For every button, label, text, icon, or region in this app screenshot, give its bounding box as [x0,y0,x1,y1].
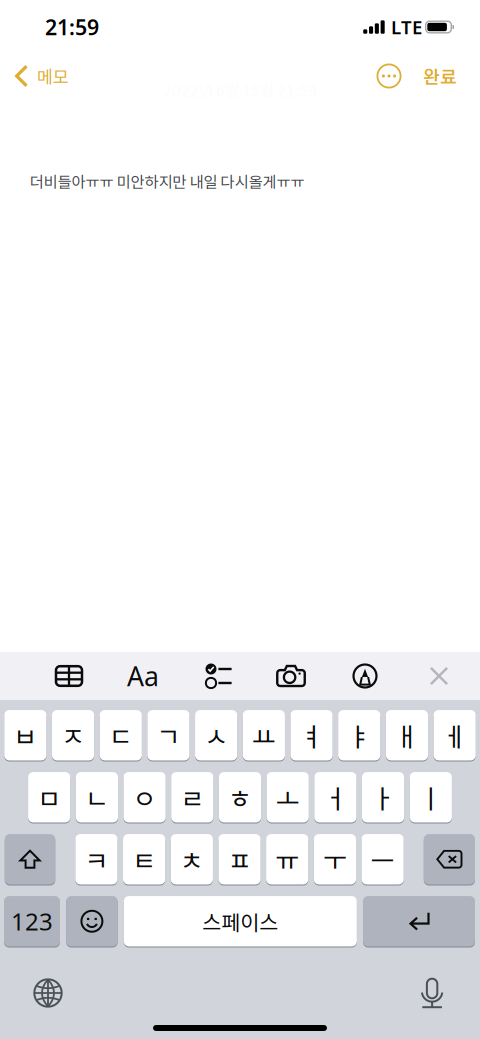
staticText: ㄷ [109,716,133,754]
button[interactable]: 스페이스 [124,895,357,947]
staticText: ㄱ [156,716,180,754]
button[interactable]: ㅕ [290,709,333,761]
staticText: ㅠ [275,840,299,878]
staticText: ㅣ [419,778,443,816]
staticText: 더비들아ㅠㅠ 미안하지만 내일 다시올게ㅠㅠ [29,170,304,192]
button[interactable]: ㅇ [123,771,166,823]
button[interactable] [363,895,475,947]
button[interactable]: ㅊ [171,833,213,885]
button[interactable]: More [357,55,401,97]
staticText: ㅂ [13,716,37,754]
staticText: 스페이스 [202,906,278,936]
staticText: ㅋ [84,840,108,878]
button[interactable]: ㅜ [314,833,356,885]
button[interactable]: ㅛ [243,709,285,761]
button[interactable]: Next keyboard [24,971,72,1015]
staticText: ㅑ [347,716,371,754]
staticText: ㅇ [133,778,157,816]
button[interactable]: Dictate [408,971,456,1015]
button[interactable]: Checklist [180,652,254,700]
staticText: ㅍ [227,840,251,878]
button[interactable]: ㅡ [361,833,404,885]
staticText: ㄴ [85,778,109,816]
staticText: ㅗ [276,778,300,816]
button[interactable]: ㄷ [100,709,142,761]
button[interactable]: 메모 [0,55,79,97]
button[interactable]: ㄱ [147,709,190,761]
button[interactable]: ㅅ [195,709,237,761]
staticText: Aa [127,658,159,694]
staticText: ㅁ [37,778,61,816]
button[interactable]: ㅗ [267,771,309,823]
button[interactable]: Markup [328,652,402,700]
button[interactable]: ㅍ [218,833,261,885]
staticText: ㅓ [323,778,347,816]
button[interactable]: ㅐ [386,709,428,761]
staticText: ㅕ [300,716,324,754]
button[interactable]: ㅋ [75,833,117,885]
button[interactable]: Text format [106,652,180,700]
staticText: ㅔ [443,716,467,754]
button[interactable]: ㅈ [52,709,94,761]
button[interactable] [424,833,475,885]
staticText: 21:59 [45,13,99,41]
button[interactable]: ㅎ [219,771,261,823]
staticText: ㅏ [371,778,395,816]
staticText: ㅌ [132,840,156,878]
staticText: ㅎ [228,778,252,816]
button[interactable]: 완료 [401,55,480,97]
button[interactable]: ㅠ [266,833,308,885]
button[interactable]: ㄴ [76,771,118,823]
button[interactable]: ㅣ [410,771,452,823]
button[interactable]: ㅌ [123,833,165,885]
button[interactable]: ㅑ [338,709,380,761]
button[interactable]: ㅓ [314,771,356,823]
button[interactable]: ㅁ [28,771,70,823]
button[interactable]: Camera [254,652,328,700]
staticText: ㄹ [180,778,204,816]
staticText: ㅐ [395,716,419,754]
button[interactable]: ㅔ [433,709,476,761]
button[interactable] [5,833,55,885]
staticText: ㅈ [61,716,85,754]
button[interactable] [66,895,118,947]
staticText: ㅅ [204,716,228,754]
staticText: 123 [11,905,53,937]
staticText: LTE [391,15,422,39]
staticText: ㅜ [323,840,347,878]
staticText: ㅡ [371,840,395,878]
staticText: ㅊ [180,840,204,878]
button[interactable]: ㄹ [171,771,213,823]
staticText: 메모 [37,63,69,89]
button[interactable]: Table [32,652,106,700]
button[interactable]: ㅏ [362,771,404,823]
staticText: 완료 [423,63,457,89]
button[interactable]: 123 [4,895,60,947]
button[interactable]: Hide keyboard [402,652,476,700]
staticText: ㅛ [252,716,276,754]
button[interactable]: ㅂ [4,709,46,761]
